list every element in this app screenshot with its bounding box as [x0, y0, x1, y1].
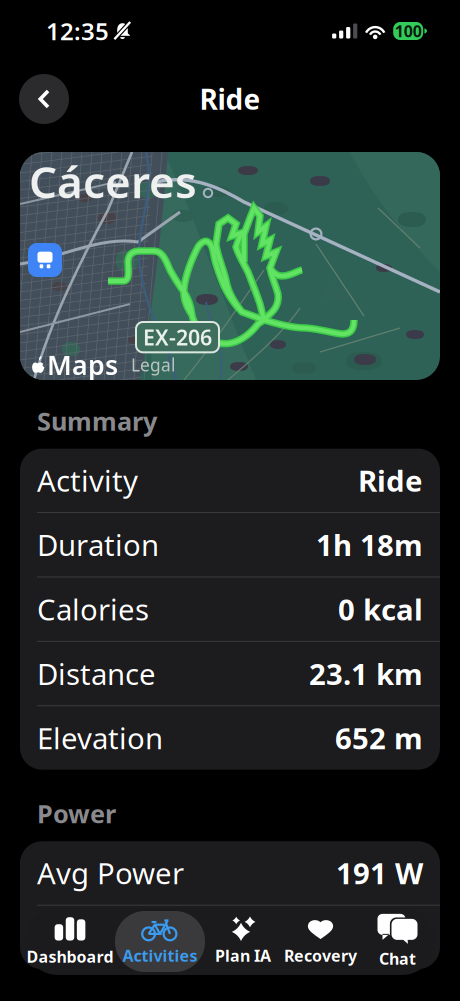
button[interactable]: Elevation	[20, 706, 440, 770]
button[interactable]: Recovery	[281, 911, 360, 972]
staticText: Dashboard	[26, 946, 113, 967]
button[interactable]: Distance	[20, 642, 440, 705]
button[interactable]: Avg Power	[20, 841, 440, 905]
staticText: Maps	[47, 347, 118, 382]
staticText: Max Power	[37, 918, 191, 957]
button[interactable]: Chat	[360, 911, 435, 972]
staticText: Ride	[358, 461, 423, 500]
staticText: Cáceres	[29, 152, 197, 210]
button[interactable]: Activity	[20, 449, 440, 512]
staticText: EX-206	[143, 323, 212, 351]
button[interactable]: Calories	[20, 577, 440, 641]
staticText: 191 W	[336, 853, 423, 892]
staticText: Elevation	[37, 718, 163, 757]
staticText: Avg Power	[37, 853, 184, 892]
staticText: Calories	[37, 590, 149, 629]
button[interactable]: Duration	[20, 513, 440, 576]
staticText: 1h 18m	[316, 525, 423, 564]
staticText: Plan IA	[215, 945, 271, 966]
staticText: Legal	[131, 353, 175, 376]
staticText: Ride	[199, 80, 260, 118]
staticText: Duration	[37, 525, 159, 564]
button[interactable]: Activities	[115, 911, 205, 972]
staticText: 420 W	[336, 918, 423, 957]
staticText: Summary	[37, 404, 157, 438]
staticText: 23.1 km	[309, 654, 423, 693]
staticText: 652 m	[335, 718, 423, 757]
staticText: Activity	[37, 461, 138, 500]
staticText: 0 kcal	[338, 590, 423, 629]
staticText: Recovery	[284, 945, 357, 966]
staticText: 12:35	[46, 15, 109, 47]
staticText: 100	[395, 20, 422, 42]
button[interactable]: Max Power	[20, 906, 440, 969]
button[interactable]: Dashboard	[25, 911, 115, 972]
button[interactable]: Plan IA	[205, 911, 281, 972]
staticText: Activities	[122, 945, 197, 966]
staticText: Chat	[379, 948, 416, 969]
staticText: Distance	[37, 654, 156, 693]
button[interactable]: Back	[19, 74, 69, 124]
staticText: Power	[37, 797, 116, 830]
